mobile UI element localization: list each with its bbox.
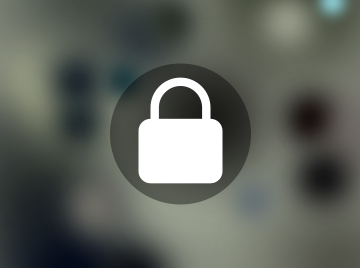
button[interactable]: Locked content	[110, 63, 251, 204]
